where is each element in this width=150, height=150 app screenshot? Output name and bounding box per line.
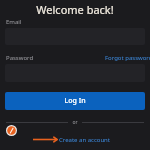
staticText: Password (6, 54, 34, 62)
staticText: Log In (64, 96, 86, 106)
staticText: Create an account (59, 136, 110, 144)
button[interactable]: Create an account (58, 135, 111, 145)
button[interactable]: Forgot password? (104, 53, 150, 63)
staticText: Forgot password? (105, 54, 150, 62)
staticText: or (72, 119, 78, 126)
staticText: Welcome back! (0, 2, 150, 17)
button[interactable]: Log In (5, 92, 145, 110)
staticText: Email (6, 18, 22, 26)
button[interactable]: Account badge (6, 125, 17, 136)
